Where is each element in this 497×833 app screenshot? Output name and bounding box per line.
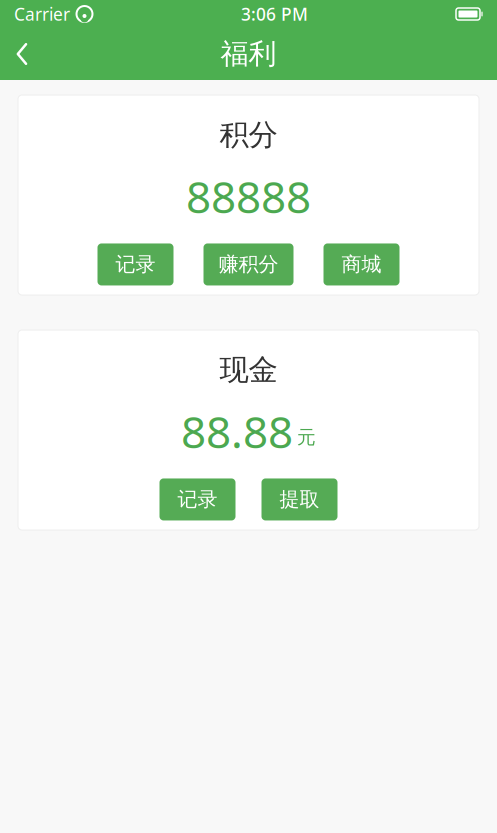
- staticText: Carrier: [14, 2, 70, 25]
- staticText: 3:06 PM: [241, 2, 308, 25]
- staticText: 记录: [115, 252, 155, 277]
- button[interactable]: 商城: [323, 243, 399, 285]
- staticText: 提取: [279, 487, 319, 512]
- staticText: 福利: [220, 37, 276, 71]
- staticText: 88.88: [181, 402, 293, 460]
- button[interactable]: 记录: [159, 478, 235, 520]
- staticText: 元: [297, 426, 316, 449]
- staticText: 88888: [186, 167, 311, 225]
- staticText: 积分: [219, 117, 277, 153]
- button[interactable]: 提取: [261, 478, 337, 520]
- staticText: 商城: [341, 252, 381, 277]
- button[interactable]: 赚积分: [203, 243, 293, 285]
- button[interactable]: 记录: [97, 243, 173, 285]
- staticText: 记录: [177, 487, 217, 512]
- button[interactable]: Back: [0, 32, 44, 76]
- staticText: 现金: [219, 352, 277, 388]
- staticText: 赚积分: [218, 252, 278, 277]
